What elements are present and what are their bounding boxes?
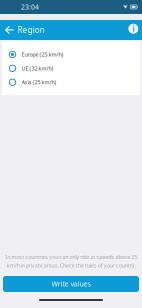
staticText: i (132, 23, 134, 34)
staticText: UE (32 km/h) (21, 65, 53, 72)
button[interactable]: UE (32 km/h) (2, 61, 140, 75)
button[interactable]: Information (128, 20, 142, 40)
button[interactable]: Region (18, 20, 45, 40)
staticText: Write values (51, 280, 90, 288)
button[interactable]: Europe (25 km/h) (2, 47, 140, 61)
staticText: Region (18, 25, 45, 35)
button[interactable]: Back (0, 20, 18, 40)
button[interactable]: Write values (3, 276, 139, 292)
button[interactable]: Asia (25 km/h) (2, 75, 140, 89)
staticText: Europe (25 km/h) (21, 51, 63, 58)
staticText: Asia (25 km/h) (21, 79, 56, 86)
staticText: In most countries you can only ride at s… (5, 253, 137, 269)
staticText: 23:04 (21, 3, 39, 11)
